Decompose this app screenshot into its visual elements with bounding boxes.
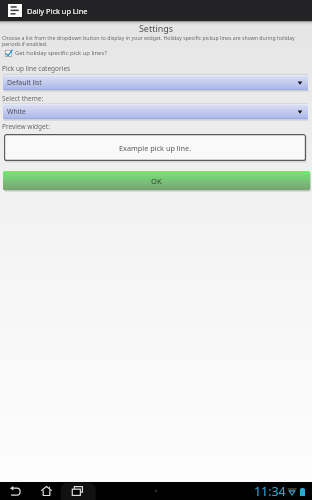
- button[interactable]: White: [3, 104, 308, 119]
- button[interactable]: Back: [9, 484, 22, 497]
- button[interactable]: OK: [3, 171, 310, 190]
- staticText: Choose a list from the dropdown button t…: [2, 34, 310, 48]
- button[interactable]: Example pick up line.: [4, 134, 306, 161]
- staticText: Example pick up line.: [119, 143, 192, 153]
- button[interactable]: Get holiday specific pick up lines?: [0, 48, 312, 58]
- button[interactable]: Home: [40, 484, 53, 497]
- button[interactable]: Recent apps: [71, 484, 84, 497]
- staticText: OK: [151, 176, 162, 186]
- staticText: Get holiday specific pick up lines?: [15, 49, 107, 57]
- staticText: Daily Pick up Line: [27, 6, 88, 16]
- staticText: Preview widget:: [2, 122, 50, 131]
- staticText: White: [7, 107, 26, 116]
- staticText: Default list: [7, 78, 42, 87]
- staticText: Pick up line categories: [2, 64, 71, 73]
- staticText: Settings: [0, 22, 312, 34]
- staticText: 11:34: [254, 483, 286, 500]
- button[interactable]: Default list: [3, 75, 308, 90]
- staticText: Select theme:: [2, 94, 44, 103]
